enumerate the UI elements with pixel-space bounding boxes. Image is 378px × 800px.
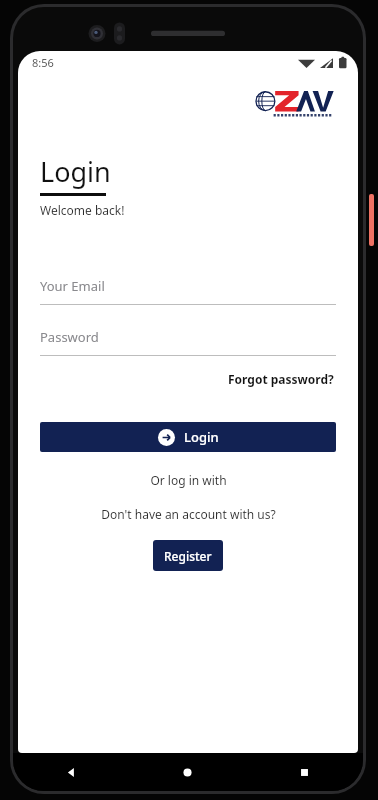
staticText: Or log in with — [150, 472, 227, 488]
button[interactable]: Recents — [246, 753, 363, 791]
staticText: Don't have an account with us? — [101, 506, 276, 522]
button[interactable]: Home — [129, 753, 246, 791]
button[interactable]: Login — [40, 422, 336, 452]
staticText: 8:56 — [32, 55, 54, 70]
staticText: Login — [184, 428, 219, 446]
staticText: Welcome back! — [40, 202, 125, 218]
button[interactable]: Password — [40, 325, 336, 356]
button[interactable]: Register — [153, 540, 223, 571]
staticText: Forgot password? — [228, 371, 334, 387]
staticText: Register — [164, 548, 212, 564]
button[interactable]: Back — [13, 753, 129, 791]
button[interactable]: Forgot password? — [226, 368, 336, 390]
staticText: Your Email — [40, 277, 105, 295]
button[interactable]: Zeed Worldwide logo — [258, 89, 336, 121]
button[interactable]: Your Email — [40, 274, 336, 305]
staticText: Password — [40, 328, 99, 346]
staticText: Login — [40, 153, 111, 190]
